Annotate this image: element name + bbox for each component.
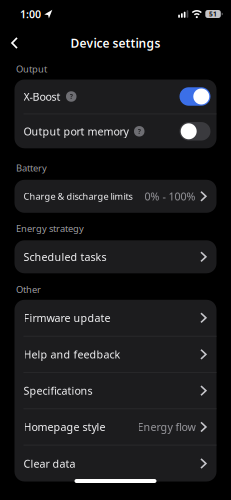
button[interactable]: Help [66, 91, 76, 102]
staticText: Energy flow [137, 420, 195, 434]
button[interactable]: Homepage style [14, 409, 216, 445]
staticText: Specifications [23, 384, 92, 398]
staticText: Firmware update [23, 311, 110, 325]
staticText: Scheduled tasks [23, 250, 106, 264]
staticText: Other [16, 283, 41, 295]
staticText: 1:00 [20, 7, 41, 21]
staticText: Output [16, 63, 47, 75]
staticText: Battery [16, 162, 47, 174]
staticText: Device settings [70, 35, 160, 51]
staticText: ? [138, 127, 141, 136]
button[interactable]: X-Boost [179, 87, 210, 106]
button[interactable]: Help [134, 126, 144, 136]
button[interactable]: Charge & discharge limits [14, 180, 216, 213]
staticText: Charge & discharge limits [23, 190, 132, 202]
button[interactable]: Output port memory [179, 122, 210, 140]
staticText: Homepage style [23, 420, 105, 434]
button[interactable]: Clear data [14, 445, 216, 481]
staticText: Output port memory [23, 124, 128, 138]
button[interactable]: Scheduled tasks [14, 240, 216, 273]
staticText: Clear data [23, 456, 75, 471]
button[interactable]: Help and feedback [14, 337, 216, 372]
button[interactable]: Back [0, 31, 18, 55]
button[interactable]: Firmware update [14, 300, 216, 336]
staticText: Energy strategy [16, 222, 84, 234]
button[interactable]: Specifications [14, 373, 216, 408]
staticText: 0% - 100% [144, 189, 195, 203]
staticText: X-Boost [23, 89, 60, 104]
staticText: Help and feedback [23, 347, 120, 361]
staticText: 51 [209, 10, 217, 18]
staticText: ? [70, 92, 73, 101]
